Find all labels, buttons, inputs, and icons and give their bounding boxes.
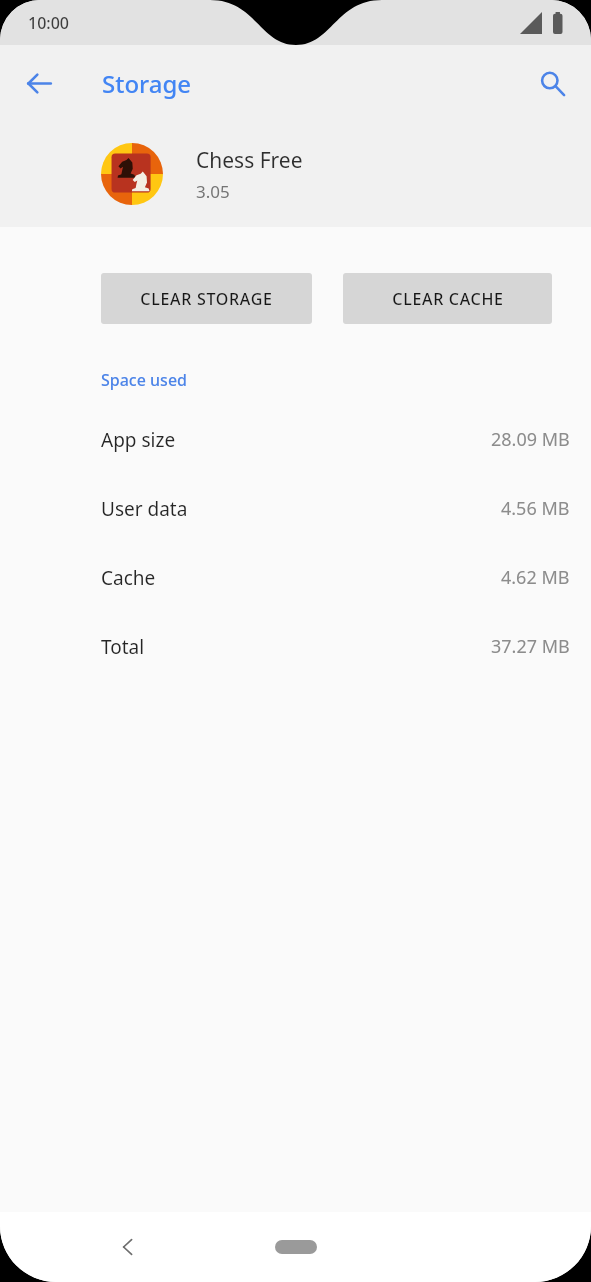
button[interactable]: Total [0, 612, 591, 681]
button[interactable]: App size [0, 405, 591, 474]
button[interactable]: CLEAR STORAGE [101, 273, 312, 324]
staticText: User data [101, 496, 188, 522]
button[interactable]: CLEAR CACHE [343, 273, 552, 324]
button[interactable]: Back [104, 1223, 152, 1271]
staticText: App size [101, 427, 176, 453]
button[interactable]: Search [528, 59, 576, 107]
staticText: CLEAR CACHE [392, 288, 504, 310]
staticText: 4.56 MB [501, 496, 570, 521]
staticText: 37.27 MB [491, 634, 570, 659]
staticText: Storage [102, 67, 192, 100]
button[interactable]: Cache [0, 543, 591, 612]
button[interactable]: User data [0, 474, 591, 543]
staticText: Chess Free [196, 146, 303, 175]
staticText: Cache [101, 565, 156, 591]
staticText: 4.62 MB [501, 565, 570, 590]
button[interactable]: Home [275, 1240, 317, 1254]
staticText: CLEAR STORAGE [140, 288, 273, 310]
staticText: 28.09 MB [491, 427, 570, 452]
staticText: Space used [101, 369, 187, 391]
staticText: 3.05 [196, 180, 230, 203]
staticText: Total [101, 634, 145, 660]
button[interactable]: Back [15, 59, 63, 107]
staticText: 10:00 [28, 12, 69, 34]
